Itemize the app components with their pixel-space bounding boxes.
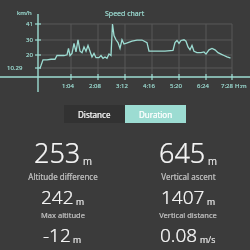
staticText: 10.29: [7, 64, 23, 72]
staticText: Speed chart: [105, 9, 145, 19]
staticText: m: [76, 195, 85, 207]
staticText: 1407: [161, 184, 205, 210]
staticText: 5:20: [170, 82, 182, 90]
button[interactable]: Duration: [125, 105, 186, 123]
staticText: -12: [43, 222, 71, 248]
button[interactable]: Distance: [64, 105, 125, 123]
staticText: m: [83, 154, 92, 168]
staticText: Distance: [78, 109, 111, 120]
staticText: m: [208, 154, 217, 168]
staticText: 1:04: [62, 82, 74, 90]
staticText: m/s: [200, 233, 216, 245]
staticText: Vertical ascent: [161, 171, 216, 182]
staticText: 2:08: [89, 82, 101, 90]
staticText: Altitude difference: [28, 171, 98, 182]
staticText: H:m: [235, 82, 247, 90]
staticText: m: [207, 195, 216, 207]
staticText: Duration: [139, 109, 173, 120]
staticText: 30: [26, 36, 33, 44]
staticText: 242: [41, 184, 74, 210]
staticText: 253: [34, 134, 81, 171]
staticText: 645: [159, 134, 206, 171]
staticText: Max altitude: [41, 210, 85, 220]
staticText: 4:16: [143, 82, 155, 90]
staticText: 3:12: [116, 82, 128, 90]
staticText: 0.08: [160, 222, 198, 248]
staticText: km/h: [17, 9, 32, 17]
staticText: 6:24: [197, 82, 209, 90]
staticText: m: [73, 233, 82, 245]
staticText: 20: [26, 51, 33, 59]
staticText: 41: [26, 20, 33, 28]
staticText: Vertical distance: [159, 210, 217, 220]
staticText: 7:28: [221, 82, 233, 90]
